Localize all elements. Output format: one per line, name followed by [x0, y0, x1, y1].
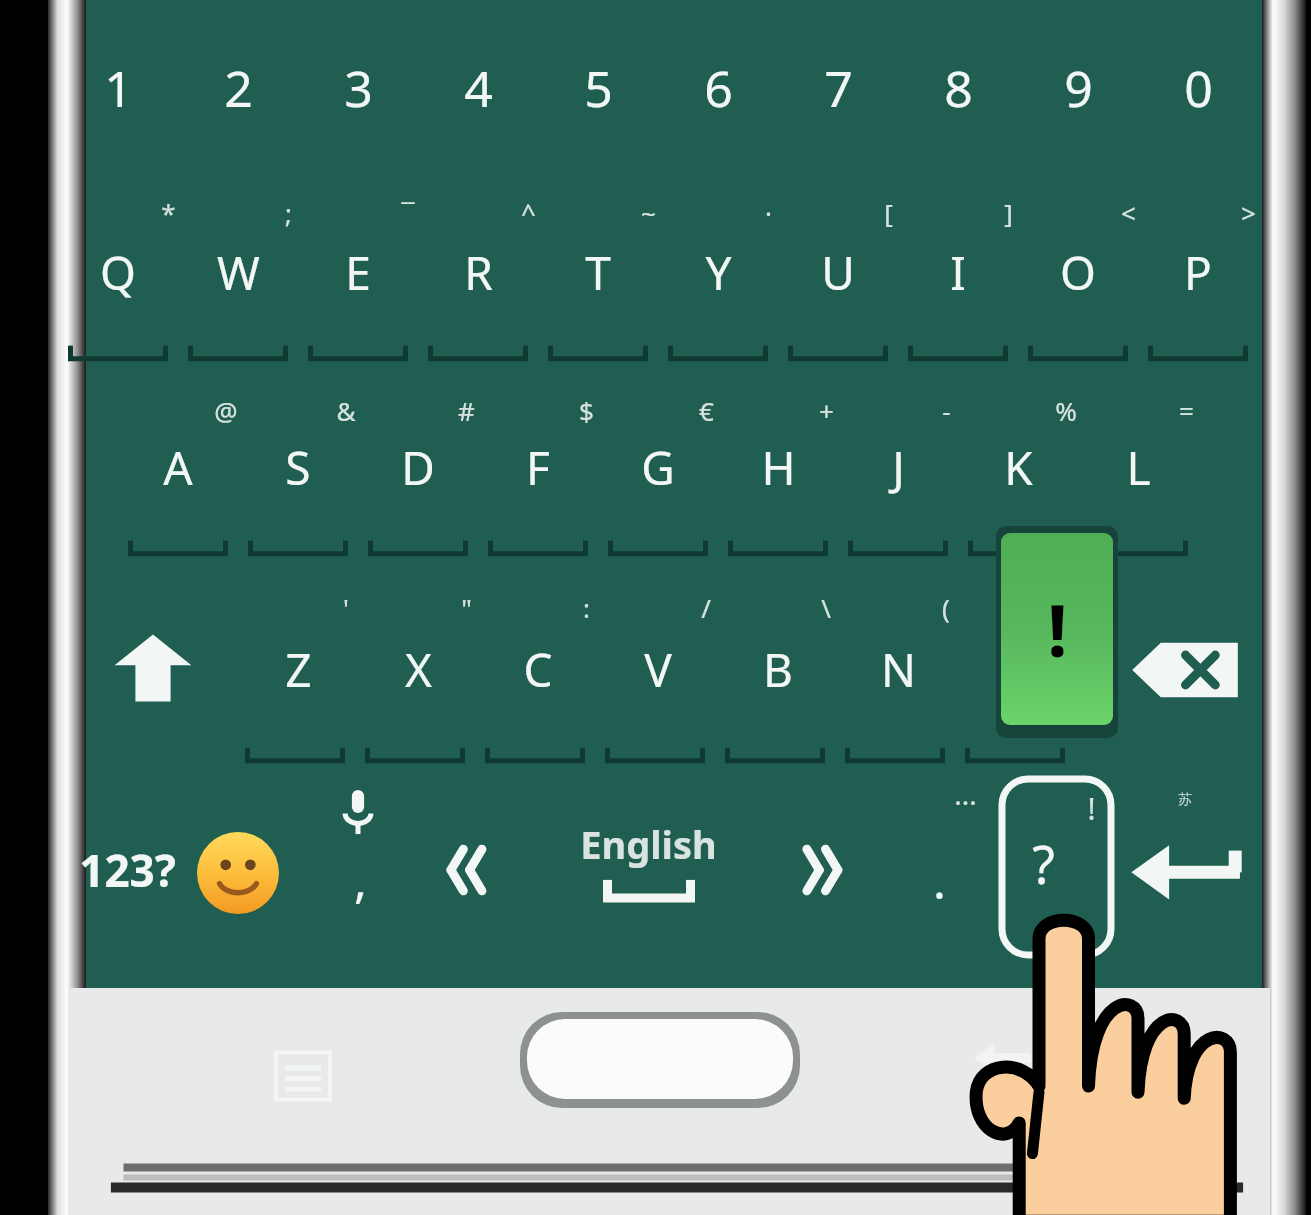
- button[interactable]: Emoji: [192, 828, 284, 918]
- button[interactable]: 9: [1023, 40, 1133, 135]
- button[interactable]: [1000, 622, 1110, 717]
- button[interactable]: G: [603, 420, 713, 515]
- staticText: 5: [584, 54, 613, 122]
- staticText: E: [345, 241, 371, 304]
- staticText: T: [585, 241, 611, 304]
- staticText: ^: [521, 195, 536, 230]
- button[interactable]: Menu: [258, 1040, 348, 1112]
- staticText: ~: [641, 195, 656, 230]
- button[interactable]: .: [898, 840, 980, 920]
- button[interactable]: C: [483, 622, 593, 717]
- staticText: ': [343, 590, 349, 625]
- button[interactable]: Exclamation key preview: [1001, 533, 1113, 725]
- button[interactable]: 0: [1143, 40, 1253, 135]
- staticText: 7: [824, 54, 853, 122]
- staticText: €: [699, 393, 714, 428]
- staticText: >: [1241, 195, 1256, 230]
- button[interactable]: T: [543, 225, 653, 320]
- staticText: ;: [285, 195, 292, 230]
- staticText: :: [583, 590, 590, 625]
- button[interactable]: 8: [903, 40, 1013, 135]
- button[interactable]: 3: [303, 40, 413, 135]
- button[interactable]: W: [183, 225, 293, 320]
- staticText: (: [942, 590, 950, 625]
- staticText: <: [1121, 195, 1136, 230]
- staticText: A: [163, 436, 193, 499]
- button[interactable]: 2: [183, 40, 293, 135]
- staticText: 4: [464, 54, 493, 122]
- button[interactable]: 123?: [62, 830, 192, 910]
- staticText: G: [641, 436, 675, 499]
- button[interactable]: Shift: [95, 615, 210, 720]
- button[interactable]: Voice input: [325, 782, 391, 842]
- button[interactable]: X: [363, 622, 473, 717]
- staticText: J: [892, 436, 905, 499]
- button[interactable]: Question mark key: [999, 776, 1114, 958]
- staticText: X: [405, 638, 432, 701]
- button[interactable]: Next: [778, 830, 878, 910]
- staticText: !: [1047, 580, 1068, 678]
- staticText: 0: [1184, 54, 1213, 122]
- staticText: L: [1126, 436, 1151, 499]
- staticText: Y: [705, 241, 732, 304]
- button[interactable]: F: [483, 420, 593, 515]
- staticText: %: [1055, 393, 1077, 428]
- staticText: ,: [354, 847, 367, 912]
- staticText: D: [401, 436, 435, 499]
- staticText: Q: [100, 241, 136, 304]
- staticText: I: [950, 241, 966, 304]
- staticText: R: [464, 241, 493, 304]
- button[interactable]: R: [423, 225, 533, 320]
- staticText: F: [526, 436, 550, 499]
- staticText: -: [942, 393, 951, 428]
- staticText: 2: [224, 54, 253, 122]
- staticText: H: [761, 436, 796, 499]
- button[interactable]: I: [903, 225, 1013, 320]
- staticText: 8: [944, 54, 973, 122]
- button[interactable]: D: [363, 420, 473, 515]
- button[interactable]: A: [123, 420, 233, 515]
- button[interactable]: 7: [783, 40, 893, 135]
- staticText: .: [933, 848, 946, 913]
- staticText: C: [523, 638, 553, 701]
- staticText: [: [884, 195, 893, 230]
- button[interactable]: O: [1023, 225, 1133, 320]
- staticText: !: [1087, 788, 1096, 829]
- button[interactable]: S: [243, 420, 353, 515]
- button[interactable]: N: [843, 622, 953, 717]
- staticText: W: [217, 241, 260, 304]
- button[interactable]: English: [540, 818, 756, 918]
- button[interactable]: V: [603, 622, 713, 717]
- button[interactable]: Z: [243, 622, 353, 717]
- button[interactable]: Enter: [1122, 828, 1254, 914]
- button[interactable]: Y: [663, 225, 773, 320]
- button[interactable]: P: [1143, 225, 1253, 320]
- button[interactable]: E: [303, 225, 413, 320]
- button[interactable]: J: [843, 420, 953, 515]
- button[interactable]: 5: [543, 40, 653, 135]
- button[interactable]: ,: [318, 838, 402, 920]
- staticText: K: [1004, 436, 1033, 499]
- button[interactable]: 1: [63, 40, 173, 135]
- button[interactable]: L: [1083, 420, 1193, 515]
- button[interactable]: Q: [63, 225, 173, 320]
- staticText: S: [285, 436, 311, 499]
- button[interactable]: 4: [423, 40, 533, 135]
- button[interactable]: Back: [960, 1030, 1050, 1100]
- button[interactable]: Home: [520, 1012, 800, 1108]
- staticText: #: [458, 393, 475, 428]
- button[interactable]: 6: [663, 40, 773, 135]
- staticText: N: [881, 638, 916, 701]
- button[interactable]: U: [783, 225, 893, 320]
- staticText: P: [1184, 241, 1212, 304]
- button[interactable]: Previous: [422, 830, 522, 910]
- staticText: ?: [1032, 828, 1055, 894]
- button[interactable]: H: [723, 420, 833, 515]
- button[interactable]: B: [723, 622, 833, 717]
- button[interactable]: Backspace: [1120, 625, 1250, 715]
- staticText: ‾: [401, 195, 415, 230]
- button[interactable]: K: [963, 420, 1073, 515]
- staticText: *: [161, 195, 176, 230]
- staticText: 1: [104, 54, 133, 122]
- staticText: B: [763, 638, 793, 701]
